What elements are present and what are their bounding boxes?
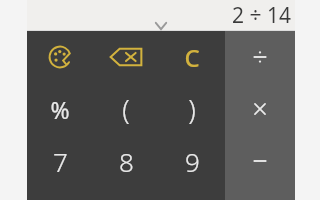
staticText: 9 bbox=[185, 144, 200, 179]
button[interactable]: Theme colours bbox=[27, 31, 93, 83]
staticText: 2 ÷ 14 bbox=[232, 1, 291, 30]
button[interactable]: 7 bbox=[27, 135, 93, 187]
button[interactable]: C bbox=[159, 31, 225, 83]
staticText: 7 bbox=[53, 144, 68, 179]
button[interactable]: ( bbox=[93, 83, 159, 135]
button[interactable]: Multiply bbox=[225, 83, 295, 135]
button[interactable]: % bbox=[27, 83, 93, 135]
button[interactable]: Collapse keypad bbox=[148, 19, 174, 31]
button[interactable]: Subtract bbox=[225, 135, 295, 187]
button[interactable]: 2 ÷ 14 bbox=[27, 0, 295, 31]
button[interactable]: Backspace bbox=[93, 31, 159, 83]
button[interactable]: 8 bbox=[93, 135, 159, 187]
staticText: ) bbox=[188, 91, 196, 128]
staticText: ( bbox=[122, 91, 130, 128]
button[interactable]: 9 bbox=[159, 135, 225, 187]
staticText: 8 bbox=[119, 144, 134, 179]
staticText: % bbox=[50, 94, 70, 125]
button[interactable]: ) bbox=[159, 83, 225, 135]
button[interactable]: Divide bbox=[225, 31, 295, 83]
staticText: C bbox=[184, 41, 200, 74]
